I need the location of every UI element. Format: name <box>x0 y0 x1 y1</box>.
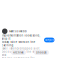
button[interactable]: Snooze <box>34 50 49 55</box>
staticText: layer; latency dropped a lot. <box>1 47 40 50</box>
button[interactable]: Archive <box>11 50 26 55</box>
staticText: today. Nice work on the caching <box>1 40 35 47</box>
staticText: Snooze <box>36 51 47 54</box>
button[interactable]: Reply <box>44 38 54 42</box>
staticText: Archive <box>13 51 24 54</box>
staticText: Docs updated in the shared wiki <box>1 50 41 57</box>
staticText: Implementation looks solid, ship it <box>1 34 40 40</box>
staticText: Reply <box>45 38 53 42</box>
staticText: and the changelog for review. <box>1 57 34 58</box>
staticText: Marcus Webb <box>9 30 27 33</box>
